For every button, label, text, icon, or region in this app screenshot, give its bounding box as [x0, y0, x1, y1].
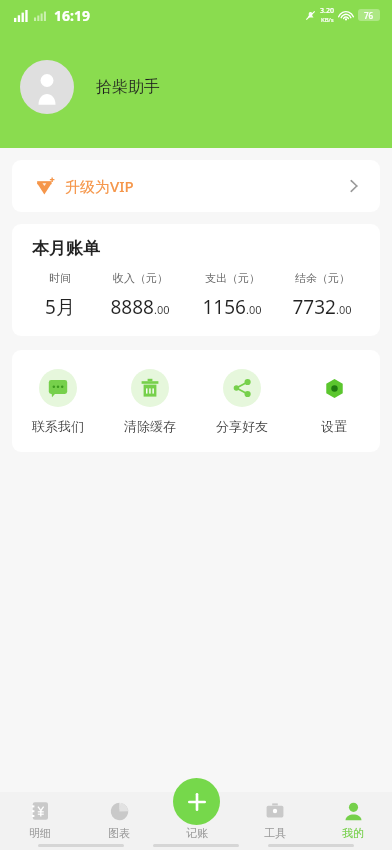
staticText: 76: [364, 10, 374, 21]
button[interactable]: 拾柴助手: [20, 60, 160, 114]
staticText: 记账: [186, 826, 208, 840]
staticText: 工具: [264, 826, 286, 840]
staticText: 本月账单: [32, 238, 100, 259]
staticText: 16:19: [54, 6, 90, 25]
button[interactable]: 明细: [0, 800, 79, 840]
staticText: 支出（元）: [205, 271, 260, 285]
button[interactable]: 图表: [79, 800, 158, 840]
staticText: 1156.00: [202, 294, 262, 320]
button[interactable]: 本月账单: [12, 224, 380, 336]
staticText: 升级为VIP: [65, 176, 134, 196]
staticText: 拾柴助手: [96, 77, 160, 97]
staticText: 我的: [342, 826, 364, 840]
staticText: 3.20: [320, 6, 334, 16]
button[interactable]: 我的: [314, 800, 392, 840]
staticText: 5月: [45, 294, 75, 320]
button[interactable]: 联系我们: [12, 369, 104, 434]
button[interactable]: 分享好友: [196, 369, 288, 434]
staticText: KB/s: [321, 16, 334, 24]
staticText: 清除缓存: [124, 418, 176, 434]
staticText: 联系我们: [32, 418, 84, 434]
staticText: 7732.00: [292, 294, 352, 320]
staticText: 明细: [29, 826, 51, 840]
button[interactable]: 升级为VIP: [12, 160, 380, 212]
staticText: 8888.00: [110, 294, 170, 320]
staticText: 设置: [321, 418, 347, 434]
staticText: 结余（元）: [295, 271, 350, 285]
button[interactable]: 记账: [173, 778, 220, 825]
staticText: 收入（元）: [113, 271, 168, 285]
button[interactable]: 设置: [288, 369, 380, 434]
staticText: 分享好友: [216, 418, 268, 434]
button[interactable]: 记账: [158, 800, 236, 840]
staticText: 图表: [108, 826, 130, 840]
staticText: 时间: [49, 271, 71, 285]
button[interactable]: 工具: [236, 800, 314, 840]
button[interactable]: 清除缓存: [104, 369, 196, 434]
